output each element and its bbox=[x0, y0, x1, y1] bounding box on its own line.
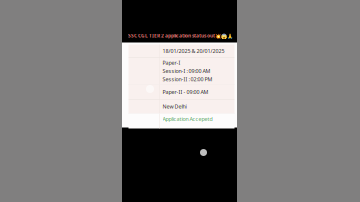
staticText: SSC CGL TIER 2 application status out💥😱🙏 bbox=[128, 32, 233, 39]
staticText: 18/01/2025 & 20/01/2025 bbox=[162, 47, 224, 55]
staticText: Paper-I bbox=[162, 59, 180, 66]
staticText: Session-II : 02:00 PM bbox=[162, 76, 212, 83]
staticText: Session-I : 09:00 AM bbox=[162, 67, 210, 75]
staticText: Paper-II - 09:00 AM bbox=[162, 88, 208, 96]
staticText: Application Accepetd bbox=[162, 115, 212, 123]
staticText: New Delhi bbox=[162, 103, 186, 110]
